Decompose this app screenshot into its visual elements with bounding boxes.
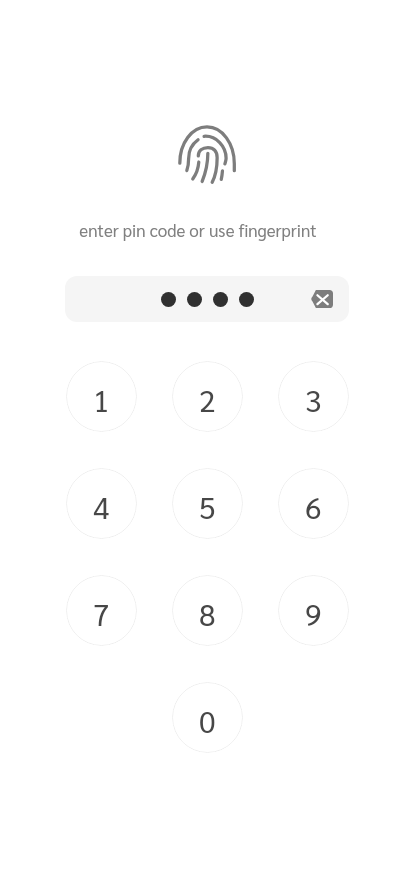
button[interactable]: 5 — [172, 468, 243, 539]
staticText: 4 — [93, 487, 110, 526]
staticText: 8 — [199, 594, 216, 633]
staticText: 3 — [305, 380, 322, 419]
button[interactable]: 7 — [66, 575, 137, 646]
staticText: 2 — [199, 380, 216, 419]
button[interactable]: 9 — [278, 575, 349, 646]
staticText: 0 — [199, 701, 216, 740]
button[interactable]: 4 — [66, 468, 137, 539]
button[interactable]: 3 — [278, 361, 349, 432]
staticText: 7 — [93, 594, 110, 633]
button[interactable]: 2 — [172, 361, 243, 432]
button[interactable]: 0 — [172, 682, 243, 753]
staticText: 6 — [305, 487, 322, 526]
button[interactable]: 6 — [278, 468, 349, 539]
staticText: 9 — [305, 594, 322, 633]
staticText: 5 — [199, 487, 216, 526]
button[interactable]: 1 — [66, 361, 137, 432]
staticText: enter pin code or use fingerprint — [79, 219, 317, 241]
button[interactable]: 8 — [172, 575, 243, 646]
staticText: 1 — [93, 380, 110, 419]
button[interactable]: Backspace — [303, 281, 339, 317]
